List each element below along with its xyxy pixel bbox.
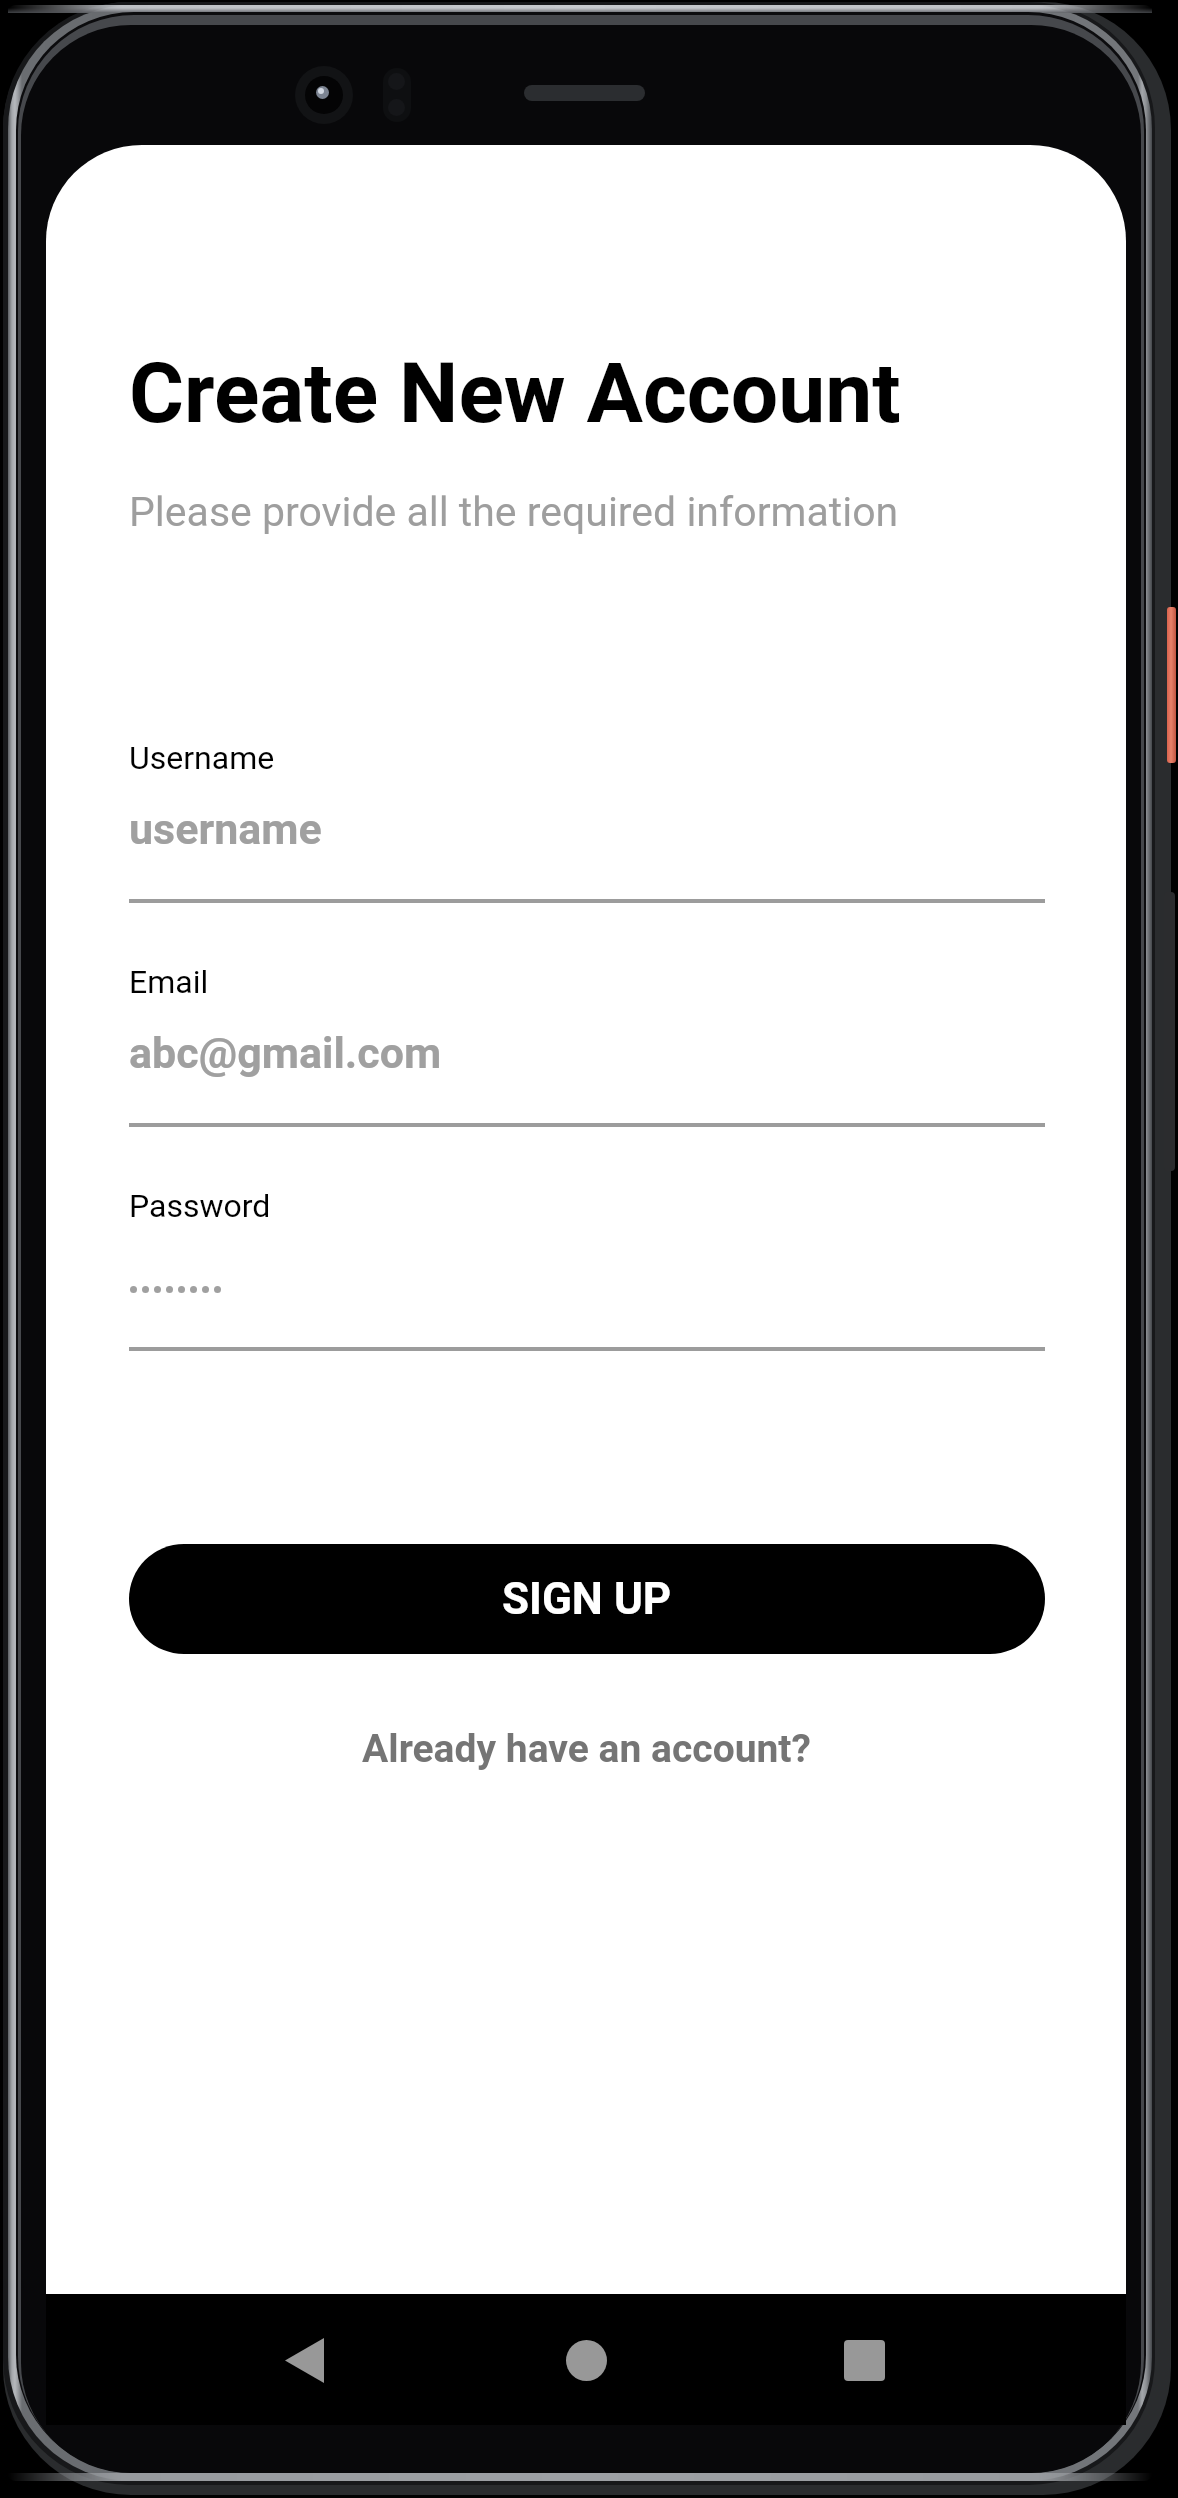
staticText: Email <box>129 963 209 1001</box>
staticText: SIGN UP <box>502 1573 672 1625</box>
button[interactable]: Already have an account? <box>46 1711 1126 1787</box>
button[interactable]: Back <box>259 2315 349 2405</box>
staticText: Please provide all the required informat… <box>129 488 899 536</box>
staticText: Username <box>129 739 275 777</box>
button[interactable]: Home <box>541 2315 631 2405</box>
staticText: abc@gmail.com <box>129 1028 442 1078</box>
button[interactable]: Recent apps <box>819 2315 909 2405</box>
button[interactable]: SIGN UP <box>129 1544 1045 1654</box>
staticText: Password <box>129 1187 271 1225</box>
staticText: Already have an account? <box>362 1726 811 1772</box>
staticText: username <box>129 804 322 854</box>
staticText: Create New Account <box>129 344 901 442</box>
